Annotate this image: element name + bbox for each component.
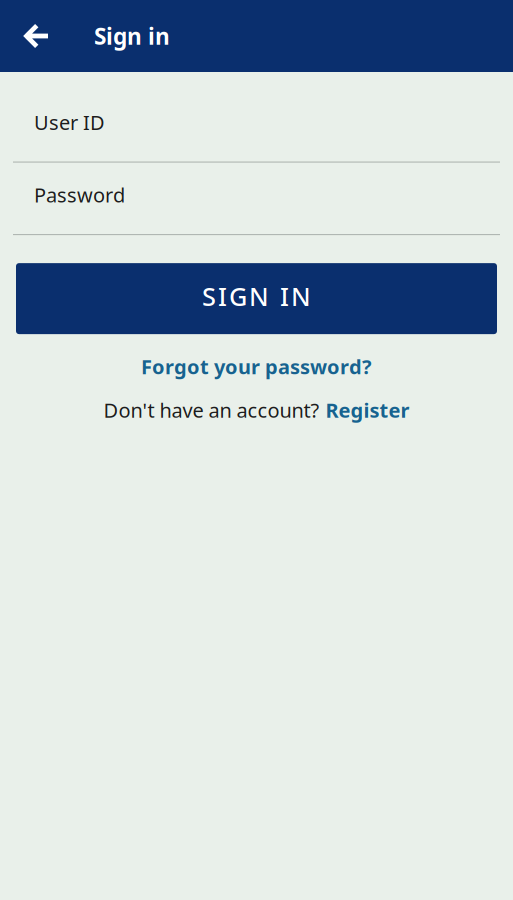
button[interactable]: Forgot your password?: [141, 353, 372, 380]
staticText: SIGN IN: [202, 279, 311, 313]
staticText: Password: [34, 182, 125, 208]
staticText: User ID: [34, 109, 105, 136]
staticText: Sign in: [94, 21, 170, 51]
staticText: Don't have an account?: [103, 397, 319, 423]
button[interactable]: SIGN IN: [16, 263, 497, 334]
staticText: Register: [325, 397, 409, 423]
button[interactable]: Register: [325, 397, 409, 423]
button[interactable]: Back: [0, 0, 71, 72]
staticText: Forgot your password?: [141, 353, 372, 380]
